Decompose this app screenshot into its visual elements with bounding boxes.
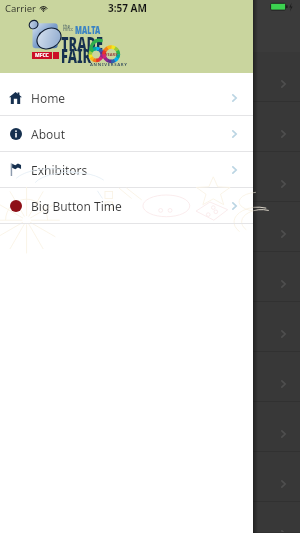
staticText: MFCC xyxy=(35,52,49,59)
button[interactable] xyxy=(0,452,300,502)
button[interactable]: Home xyxy=(0,80,253,116)
staticText: Home xyxy=(31,90,66,106)
staticText: FAIR xyxy=(61,42,91,69)
button[interactable]: About xyxy=(0,116,253,152)
button[interactable] xyxy=(0,102,300,152)
staticText: TRADE xyxy=(61,30,103,57)
staticText: About xyxy=(31,126,66,142)
staticText: ANNIVERSARY xyxy=(90,62,128,68)
staticText: mfcc xyxy=(63,26,74,32)
staticText: Exhibitors xyxy=(31,162,88,178)
staticText: Carrier xyxy=(5,2,36,15)
button[interactable]: Big Button Time xyxy=(0,188,253,224)
button[interactable] xyxy=(0,302,300,352)
staticText: YEARS xyxy=(105,52,118,58)
button[interactable] xyxy=(0,152,300,202)
staticText: 3:57 AM xyxy=(108,1,147,15)
button[interactable] xyxy=(0,252,300,302)
staticText: the xyxy=(63,23,70,29)
staticText: MALTA xyxy=(75,23,101,36)
button[interactable] xyxy=(0,502,300,533)
button[interactable] xyxy=(0,202,300,252)
button[interactable]: Exhibitors xyxy=(0,152,253,188)
button[interactable] xyxy=(0,352,300,402)
staticText: Big Button Time xyxy=(31,198,122,214)
button[interactable] xyxy=(0,52,300,102)
button[interactable] xyxy=(0,402,300,452)
